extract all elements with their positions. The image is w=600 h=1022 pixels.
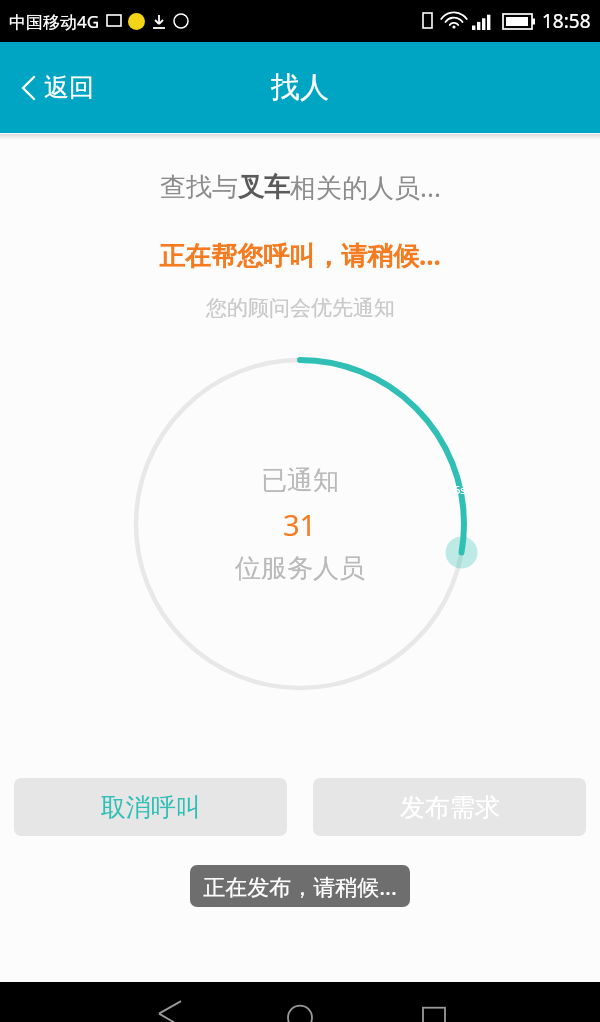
staticText: 找人 [271,69,329,106]
staticText: 中国移动4G [9,10,100,33]
staticText: 返回 [44,72,94,103]
staticText: 取消呼叫 [101,792,201,823]
staticText: 18:58 [542,8,591,34]
button[interactable]: 发布需求 [313,778,586,836]
staticText: 您的顾问会优先通知 [206,295,395,321]
staticText: 位服务人员 [235,552,365,585]
staticText: 6s [454,482,466,497]
button[interactable]: Recents [412,982,456,1022]
staticText: 发布需求 [400,792,500,823]
button[interactable]: 返回 [0,62,116,113]
button[interactable]: Home [278,982,322,1022]
staticText: 已通知 [261,464,339,497]
staticText: 查找与 [160,171,238,204]
staticText: 正在发布，请稍候... [203,871,397,901]
staticText: 叉车 [238,171,290,204]
button[interactable]: 取消呼叫 [14,778,287,836]
staticText: 正在帮您呼叫，请稍候... [159,237,441,273]
staticText: 31 [283,505,317,544]
staticText: 相关的人员... [290,169,441,205]
button[interactable]: Back [148,982,192,1022]
